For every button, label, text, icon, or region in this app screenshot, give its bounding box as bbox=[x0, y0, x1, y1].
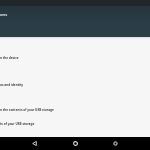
button[interactable]: ons bbox=[0, 6, 150, 37]
button[interactable]: ts of your USB storage bbox=[0, 122, 150, 129]
button[interactable]: Back bbox=[28, 137, 41, 150]
button[interactable]: Home bbox=[69, 137, 82, 150]
button[interactable]: n the device bbox=[0, 56, 150, 63]
staticText: n the contents of your USB storage bbox=[0, 108, 54, 112]
staticText: ons bbox=[0, 12, 8, 18]
button[interactable]: us and identity bbox=[0, 83, 150, 90]
button[interactable]: Recents bbox=[109, 137, 122, 150]
staticText: n the device bbox=[0, 56, 19, 60]
staticText: us and identity bbox=[0, 83, 24, 87]
staticText: ts of your USB storage bbox=[0, 122, 35, 126]
button[interactable]: n the contents of your USB storage bbox=[0, 108, 150, 115]
